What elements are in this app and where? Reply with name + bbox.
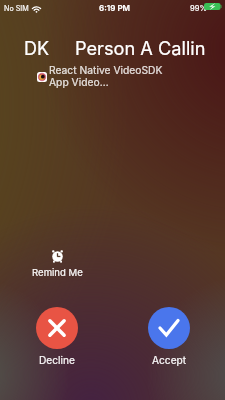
staticText: 6:19 PM [99,3,131,13]
button[interactable]: Remind Me [24,244,90,278]
staticText: Remind Me [32,267,83,279]
staticText: Accept [152,354,187,366]
staticText: DK [24,38,50,60]
button[interactable]: Decline [36,307,78,349]
staticText: React Native VideoSDK App Video… [49,64,185,88]
staticText: No SIM [4,4,29,13]
staticText: 99% [190,4,207,13]
staticText: Person A Calling [75,37,205,59]
button[interactable]: Accept [148,307,190,349]
staticText: Decline [39,354,76,366]
other: Remind Me [24,244,90,266]
